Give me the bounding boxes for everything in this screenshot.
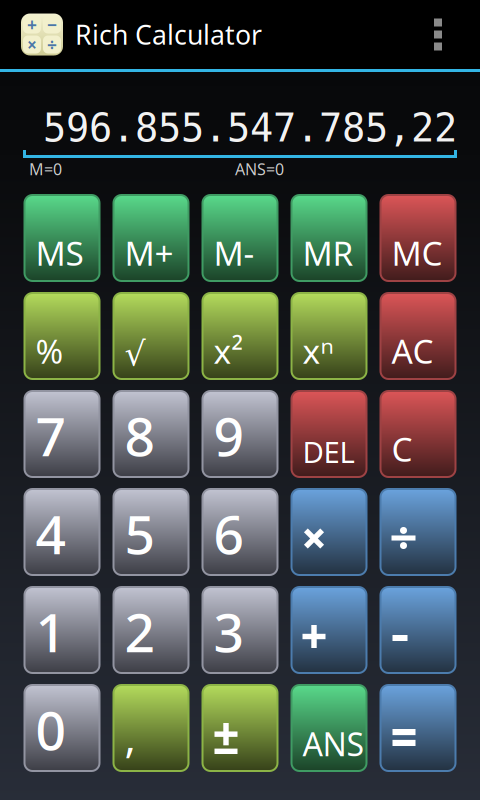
button[interactable]: xⁿ [290, 292, 367, 380]
button[interactable]: Plus [290, 586, 367, 674]
staticText: C [391, 427, 412, 471]
staticText: × [27, 33, 37, 56]
button[interactable]: 8 [112, 390, 189, 478]
staticText: AC [391, 329, 433, 373]
button[interactable]: 6 [201, 488, 278, 576]
button[interactable]: x² [201, 292, 278, 380]
staticText: DEL [302, 432, 354, 471]
button[interactable]: DEL [290, 390, 367, 478]
button[interactable]: MC [379, 194, 456, 282]
button[interactable]: 7 [23, 390, 100, 478]
button[interactable]: M+ [112, 194, 189, 282]
staticText: M+ [124, 231, 173, 275]
staticText: ÷ [47, 33, 57, 56]
staticText: M- [213, 231, 254, 275]
button[interactable]: MS [23, 194, 100, 282]
staticText: 0 [35, 694, 66, 765]
button[interactable]: Plus or minus [201, 684, 278, 772]
staticText: 9 [213, 400, 244, 471]
button[interactable]: Divide [379, 488, 456, 576]
staticText: 8 [124, 400, 155, 471]
staticText: − [47, 13, 57, 36]
button[interactable]: 9 [201, 390, 278, 478]
button[interactable]: 4 [23, 488, 100, 576]
staticText: 6 [213, 498, 244, 569]
staticText: + [27, 13, 37, 36]
button[interactable]: Equals [379, 684, 456, 772]
button[interactable]: MR [290, 194, 367, 282]
button[interactable]: 5 [112, 488, 189, 576]
staticText: MC [391, 231, 442, 275]
button[interactable]: C [379, 390, 456, 478]
button[interactable]: % [23, 292, 100, 380]
button[interactable]: More options [415, 0, 480, 69]
staticText: 4 [35, 498, 66, 569]
staticText: % [35, 329, 63, 373]
button[interactable]: , [112, 684, 189, 772]
staticText: 596.855.547.785,22 [43, 106, 457, 150]
staticText: Rich Calculator [75, 17, 262, 52]
button[interactable]: AC [379, 292, 456, 380]
button[interactable]: 1 [23, 586, 100, 674]
staticText: , [124, 708, 135, 765]
staticText: x² [213, 329, 243, 373]
button[interactable]: Minus [379, 586, 456, 674]
staticText: MS [35, 231, 83, 275]
button[interactable]: 0 [23, 684, 100, 772]
button[interactable]: 2 [112, 586, 189, 674]
staticText: ANS [302, 722, 364, 765]
staticText: MR [302, 231, 353, 275]
staticText: 7 [35, 400, 66, 471]
button[interactable]: M- [201, 194, 278, 282]
staticText: ANS=0 [235, 158, 284, 180]
button[interactable]: 3 [201, 586, 278, 674]
button[interactable]: ANS [290, 684, 367, 772]
button[interactable]: Multiply [290, 488, 367, 576]
staticText: xⁿ [302, 329, 333, 373]
staticText: 3 [213, 596, 244, 667]
staticText: 1 [35, 596, 66, 667]
button[interactable]: √ [112, 292, 189, 380]
staticText: 5 [124, 498, 155, 569]
staticText: √ [124, 335, 145, 373]
staticText: M=0 [29, 158, 62, 180]
staticText: 2 [124, 596, 155, 667]
